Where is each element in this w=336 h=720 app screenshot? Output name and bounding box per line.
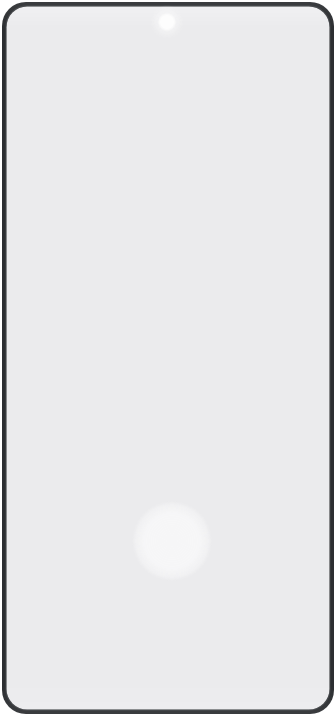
button[interactable]: Phone device mockup (0, 0, 336, 720)
